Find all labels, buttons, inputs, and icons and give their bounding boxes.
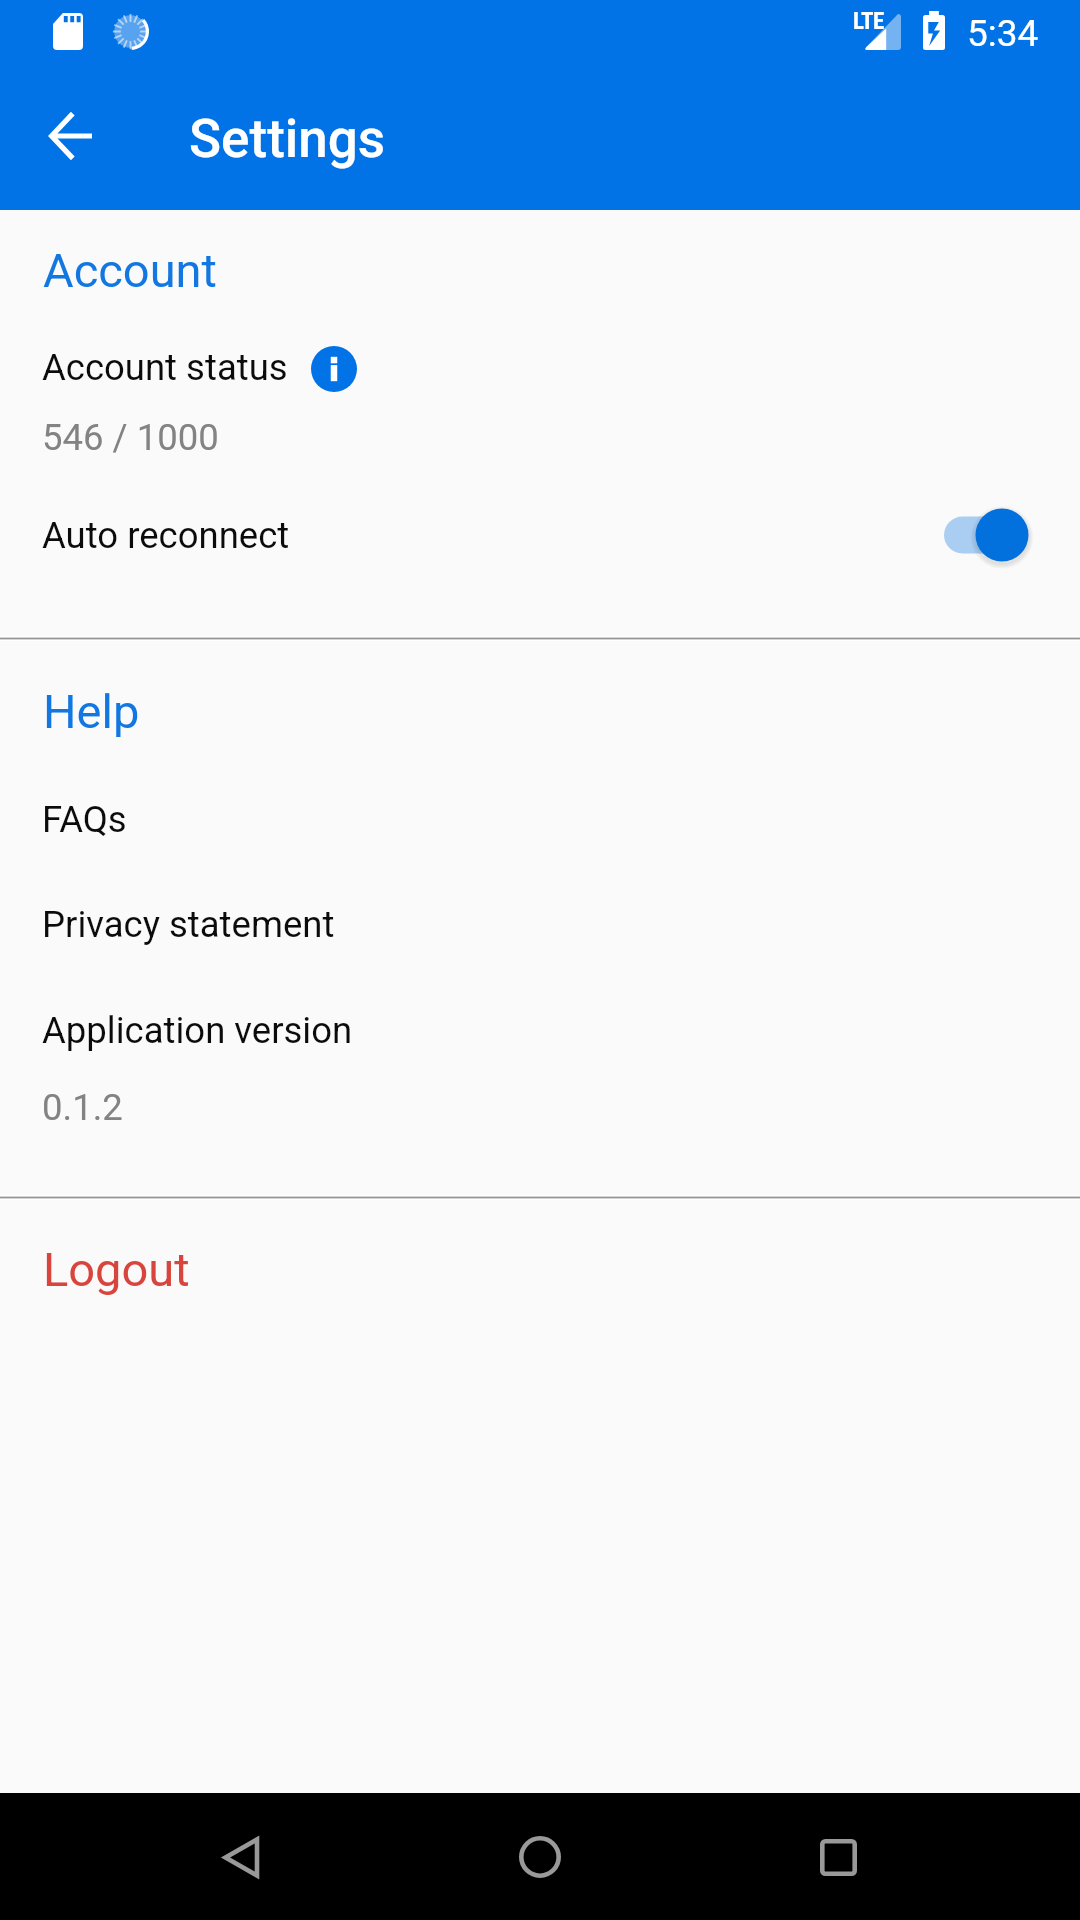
staticText: Auto reconnect <box>42 514 290 557</box>
button[interactable]: Auto reconnect toggle <box>910 493 1030 577</box>
button[interactable]: Privacy statement <box>0 880 1080 966</box>
other: Signal strength <box>864 14 901 50</box>
other: Info <box>311 346 357 392</box>
staticText: 5:34 <box>967 12 1039 55</box>
button[interactable]: Application version <box>0 986 1080 1134</box>
button[interactable]: Navigate up <box>23 88 119 184</box>
staticText: FAQs <box>42 798 127 841</box>
button[interactable]: Logout <box>0 1225 1080 1315</box>
button[interactable]: Account status <box>0 330 1080 478</box>
staticText: Application version <box>42 1009 353 1052</box>
staticText: LTE <box>853 8 884 35</box>
button[interactable]: Back <box>181 1797 301 1917</box>
staticText: Account <box>43 243 217 298</box>
staticText: Logout <box>43 1242 190 1297</box>
button[interactable]: Auto reconnect <box>0 493 1080 577</box>
staticText: Help <box>43 684 140 739</box>
button[interactable]: Home <box>480 1797 600 1917</box>
button[interactable]: FAQs <box>0 775 1080 861</box>
other: Syncing <box>112 13 149 50</box>
button[interactable]: Recent apps <box>778 1797 898 1917</box>
staticText: 0.1.2 <box>42 1086 123 1129</box>
staticText: Privacy statement <box>42 903 335 946</box>
other: SD card <box>53 13 83 50</box>
staticText: 546 / 1000 <box>42 416 219 459</box>
staticText: Settings <box>189 108 386 170</box>
other: Battery charging <box>923 11 945 50</box>
staticText: Account status <box>42 346 288 389</box>
